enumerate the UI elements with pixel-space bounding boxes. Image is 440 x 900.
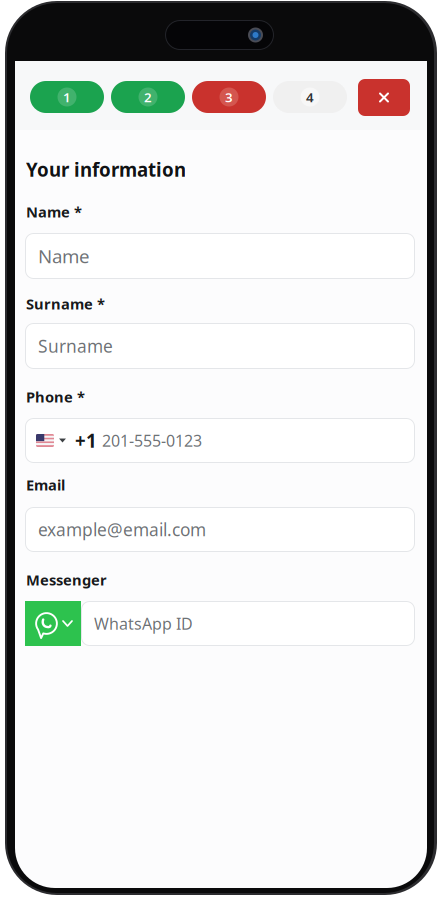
button[interactable]: WhatsApp ID — [81, 601, 415, 646]
button[interactable]: 4 — [273, 81, 347, 113]
staticText: Messenger — [26, 570, 107, 589]
button[interactable]: 3 — [192, 81, 266, 113]
staticText: WhatsApp ID — [94, 613, 193, 634]
button[interactable]: 2 — [111, 81, 185, 113]
staticText: Email — [26, 475, 65, 494]
button[interactable]: Name — [25, 233, 415, 279]
staticText: 2 — [144, 88, 152, 106]
staticText: 201-555-0123 — [102, 430, 202, 451]
staticText: Surname — [38, 334, 113, 357]
button[interactable]: +1 — [25, 418, 415, 463]
button[interactable]: example@email.com — [25, 507, 415, 552]
button[interactable]: Close — [358, 79, 410, 116]
staticText: 3 — [225, 88, 233, 106]
staticText: Phone * — [26, 387, 85, 406]
staticText: Surname * — [26, 294, 105, 313]
staticText: +1 — [75, 428, 97, 453]
staticText: Name * — [26, 202, 82, 221]
button[interactable]: 1 — [30, 81, 104, 113]
staticText: 1 — [63, 88, 71, 106]
button[interactable]: Surname — [25, 323, 415, 369]
staticText: Name — [38, 244, 90, 268]
staticText: Your information — [26, 157, 186, 182]
staticText: 4 — [306, 88, 314, 106]
staticText: example@email.com — [38, 518, 206, 541]
button[interactable]: WhatsApp messenger — [25, 601, 81, 646]
